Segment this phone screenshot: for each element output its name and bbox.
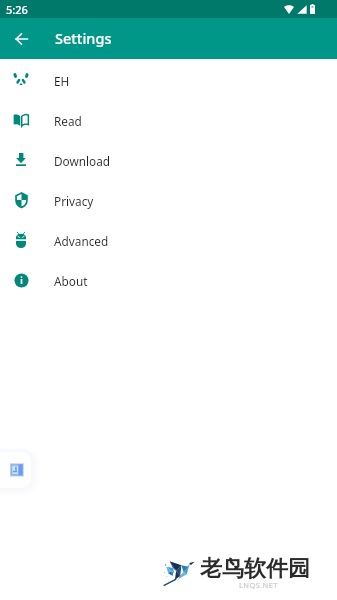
staticText: About — [54, 273, 88, 289]
staticText: Download — [54, 153, 111, 169]
staticText: 5:26 — [6, 2, 28, 17]
button[interactable]: EH — [0, 61, 337, 101]
staticText: EH — [54, 73, 70, 89]
button[interactable]: Download — [0, 141, 337, 181]
staticText: Settings — [55, 28, 112, 48]
button[interactable]: About — [0, 261, 337, 301]
staticText: Privacy — [54, 193, 94, 209]
staticText: 老鸟软件园 — [200, 555, 310, 583]
staticText: Read — [54, 113, 82, 129]
staticText: LNQS.NET — [239, 580, 278, 590]
button[interactable]: Privacy — [0, 181, 337, 221]
staticText: Advanced — [54, 233, 109, 249]
button[interactable]: Back — [5, 22, 38, 55]
button[interactable]: Read — [0, 101, 337, 141]
button[interactable]: Advanced — [0, 221, 337, 261]
button[interactable]: Floating shortcut — [10, 463, 24, 477]
